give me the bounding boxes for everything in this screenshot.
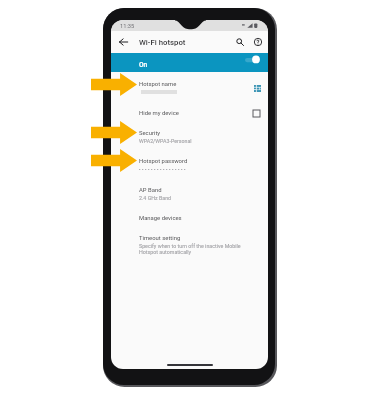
staticText: AP Band (139, 187, 162, 194)
button[interactable]: Navigate up (114, 33, 132, 51)
staticText: Hide my device (139, 110, 179, 117)
button[interactable]: Show QR code (250, 81, 264, 95)
button[interactable]: Security (111, 126, 268, 142)
staticText: On (139, 61, 148, 69)
staticText: Security (139, 130, 161, 137)
staticText: Timeout setting (139, 235, 181, 242)
staticText: WPA2/WPA3-Personal (139, 138, 192, 144)
button[interactable]: Hotspot password (111, 154, 268, 170)
other: Callout arrow (91, 149, 137, 172)
button[interactable]: Timeout setting (111, 231, 268, 254)
button[interactable]: Hide my device (111, 106, 268, 122)
button[interactable]: Hide my device (249, 106, 263, 120)
staticText: Specify when to turn off the inactive Mo… (139, 243, 241, 255)
button[interactable]: AP Band (111, 183, 268, 199)
button[interactable]: Search (232, 34, 248, 50)
button[interactable]: On (111, 53, 268, 72)
staticText: 11:35 (120, 23, 135, 30)
staticText: 2.4 GHz Band (139, 195, 172, 201)
button[interactable]: Help (250, 34, 266, 50)
staticText: Manage devices (139, 215, 182, 222)
other: Callout arrow (91, 121, 137, 144)
button[interactable]: Manage devices (111, 211, 268, 227)
staticText: Hotspot name (139, 81, 177, 88)
button[interactable]: Hotspot name (111, 77, 268, 93)
staticText: Hotspot password (139, 158, 188, 165)
staticText: Wi-Fi hotspot (139, 38, 186, 47)
other: Callout arrow (91, 73, 137, 96)
